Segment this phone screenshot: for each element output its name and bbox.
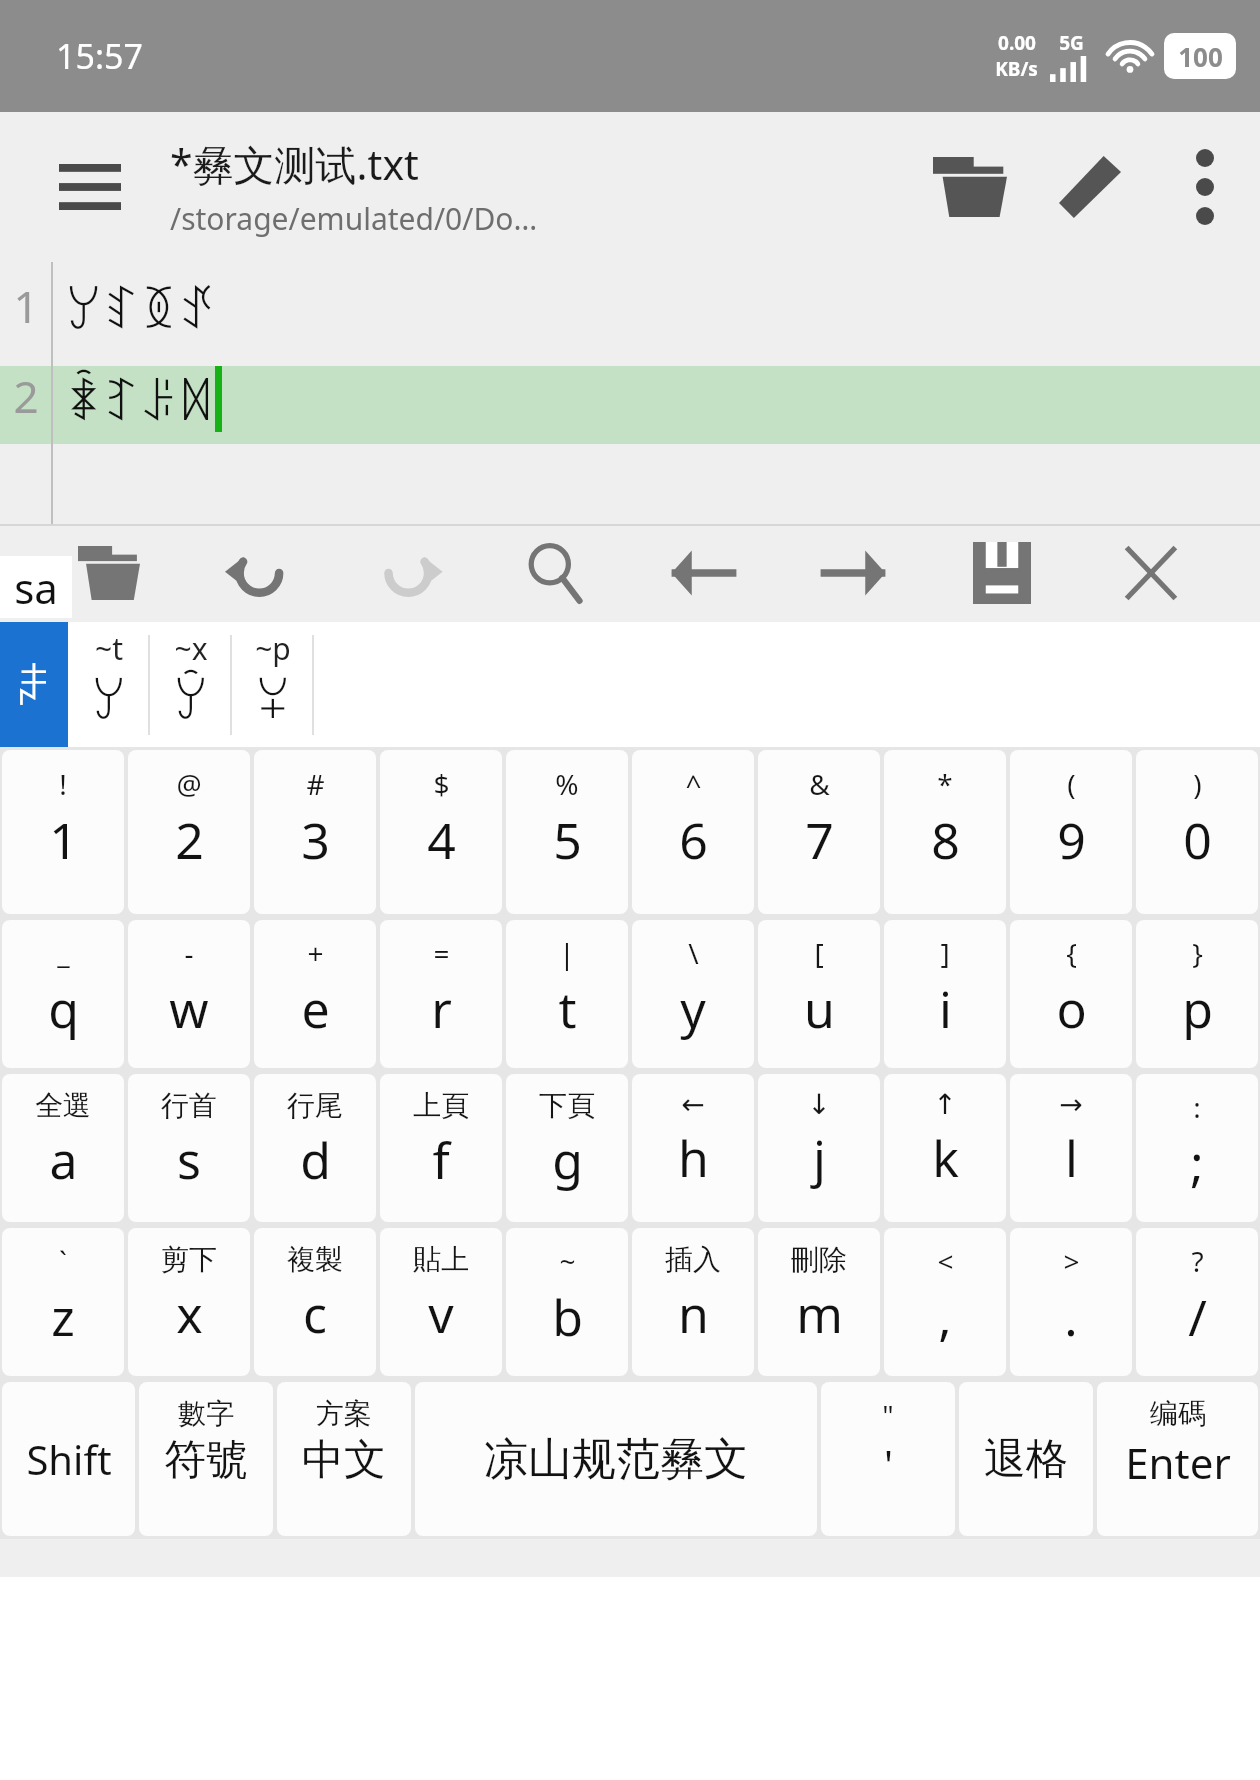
- button[interactable]: Undo: [198, 525, 318, 621]
- button[interactable]: ?: [1136, 1228, 1258, 1376]
- button[interactable]: =: [380, 920, 502, 1068]
- button[interactable]: Back: [644, 525, 764, 621]
- staticText: {: [1066, 934, 1077, 972]
- button[interactable]: 编碼: [1097, 1382, 1258, 1536]
- staticText: f: [432, 1126, 450, 1194]
- button[interactable]: More options: [1150, 132, 1260, 242]
- staticText: 9: [1057, 806, 1086, 874]
- button[interactable]: [: [758, 920, 880, 1068]
- staticText: +: [307, 934, 324, 972]
- button[interactable]: 貼上: [380, 1228, 502, 1376]
- staticText: #: [306, 765, 325, 803]
- staticText: 插入: [665, 1242, 721, 1277]
- button[interactable]: ]: [884, 920, 1006, 1068]
- button[interactable]: ↓: [758, 1074, 880, 1222]
- button[interactable]: ~p: [232, 622, 314, 747]
- staticText: 编碼: [1150, 1396, 1206, 1431]
- button[interactable]: !: [2, 750, 124, 914]
- button[interactable]: `: [2, 1228, 124, 1376]
- staticText: !: [59, 765, 67, 803]
- staticText: x: [176, 1280, 203, 1348]
- button[interactable]: Forward: [793, 525, 913, 621]
- button[interactable]: 插入: [632, 1228, 754, 1376]
- button[interactable]: @: [128, 750, 250, 914]
- button[interactable]: \: [632, 920, 754, 1068]
- button[interactable]: ^: [632, 750, 754, 914]
- button[interactable]: ←: [632, 1074, 754, 1222]
- button[interactable]: Edit: [1030, 127, 1150, 247]
- staticText: 上頁: [413, 1088, 469, 1123]
- staticText: ]: [940, 934, 950, 972]
- button[interactable]: -: [128, 920, 250, 1068]
- staticText: 行首: [161, 1088, 217, 1123]
- staticText: 全選: [35, 1088, 91, 1123]
- button[interactable]: 下頁: [506, 1074, 628, 1222]
- staticText: 5: [553, 806, 582, 874]
- staticText: ~t: [95, 628, 123, 669]
- button[interactable]: 刪除: [758, 1228, 880, 1376]
- button[interactable]: $: [380, 750, 502, 914]
- button[interactable]: (: [1010, 750, 1132, 914]
- button[interactable]: &: [758, 750, 880, 914]
- staticText: &: [809, 765, 830, 803]
- button[interactable]: 數字: [139, 1382, 273, 1536]
- staticText: ': [884, 1437, 893, 1491]
- button[interactable]: 行尾: [254, 1074, 376, 1222]
- button[interactable]: <: [884, 1228, 1006, 1376]
- staticText: _: [57, 934, 70, 972]
- button[interactable]: Open: [49, 525, 169, 621]
- button[interactable]: 凉山规范彝文: [415, 1382, 817, 1536]
- staticText: 下頁: [539, 1088, 595, 1123]
- button[interactable]: 複製: [254, 1228, 376, 1376]
- staticText: r: [431, 975, 452, 1043]
- staticText: 凉山规范彝文: [484, 1432, 748, 1487]
- staticText: z: [51, 1283, 75, 1351]
- button[interactable]: 全選: [2, 1074, 124, 1222]
- staticText: :: [1193, 1088, 1201, 1126]
- button[interactable]: 上頁: [380, 1074, 502, 1222]
- button[interactable]: ↑: [884, 1074, 1006, 1222]
- button[interactable]: Shift: [2, 1382, 135, 1536]
- staticText: `: [59, 1242, 67, 1280]
- button[interactable]: ~: [506, 1228, 628, 1376]
- button[interactable]: Search: [496, 525, 616, 621]
- button[interactable]: +: [254, 920, 376, 1068]
- button[interactable]: |: [506, 920, 628, 1068]
- button[interactable]: ~t: [68, 622, 150, 747]
- button[interactable]: 行首: [128, 1074, 250, 1222]
- staticText: 8: [931, 806, 960, 874]
- button[interactable]: ": [821, 1382, 955, 1536]
- staticText: 貼上: [413, 1242, 469, 1277]
- button[interactable]: 方案: [277, 1382, 411, 1536]
- staticText: Shift: [26, 1432, 112, 1486]
- button[interactable]: Close: [1091, 525, 1211, 621]
- button[interactable]: Redo: [347, 525, 467, 621]
- button[interactable]: }: [1136, 920, 1258, 1068]
- staticText: ;: [1190, 1129, 1204, 1197]
- button[interactable]: #: [254, 750, 376, 914]
- button[interactable]: :: [1136, 1074, 1258, 1222]
- button[interactable]: 退格: [959, 1382, 1093, 1536]
- staticText: p: [1182, 975, 1213, 1043]
- button[interactable]: Save: [942, 525, 1062, 621]
- button[interactable]: {: [1010, 920, 1132, 1068]
- button[interactable]: *: [884, 750, 1006, 914]
- staticText: 100: [1178, 39, 1223, 74]
- staticText: 4: [427, 806, 456, 874]
- button[interactable]: Menu: [40, 137, 140, 237]
- staticText: ꄑꆈꌠꉙ: [65, 368, 215, 431]
- button[interactable]: 剪下: [128, 1228, 250, 1376]
- button[interactable]: →: [1010, 1074, 1132, 1222]
- button[interactable]: ꌧ: [0, 622, 68, 747]
- button[interactable]: ~x: [150, 622, 232, 747]
- button[interactable]: Open folder: [910, 127, 1030, 247]
- button[interactable]: _: [2, 920, 124, 1068]
- staticText: 數字: [178, 1396, 234, 1431]
- staticText: 7: [805, 806, 834, 874]
- button[interactable]: ): [1136, 750, 1258, 914]
- staticText: /: [1188, 1283, 1207, 1351]
- button[interactable]: %: [506, 750, 628, 914]
- staticText: 符號: [164, 1434, 248, 1487]
- staticText: ↓: [807, 1088, 831, 1121]
- button[interactable]: >: [1010, 1228, 1132, 1376]
